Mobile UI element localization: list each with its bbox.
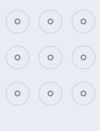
button[interactable]: App 7 [1,75,34,111]
button[interactable]: App 8 [34,75,67,111]
button[interactable]: App 5 [34,39,67,75]
button[interactable]: App 1 [1,3,34,39]
button[interactable]: App 2 [34,3,67,39]
button[interactable]: App 9 [67,75,100,111]
button[interactable]: App 3 [67,3,100,39]
button[interactable]: App 4 [1,39,34,75]
button[interactable]: App 6 [67,39,100,75]
